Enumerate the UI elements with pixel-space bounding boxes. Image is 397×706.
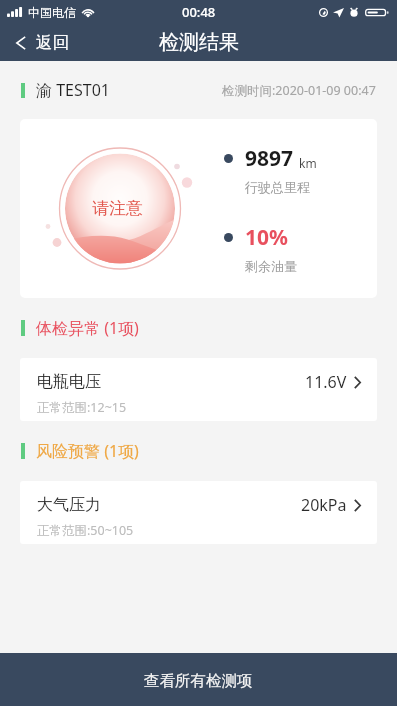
staticText: 中国电信: [28, 5, 76, 20]
staticText: 行驶总里程: [245, 179, 310, 195]
button[interactable]: 查看所有检测项: [0, 653, 397, 706]
button[interactable]: 大气压力: [20, 481, 377, 544]
staticText: 检测结果: [159, 30, 239, 55]
staticText: 00:48: [182, 3, 216, 21]
button[interactable]: 返回: [0, 24, 83, 61]
staticText: 检测时间:2020-01-09 00:47: [222, 82, 376, 99]
staticText: 9897: [245, 144, 294, 173]
staticText: 返回: [36, 32, 69, 53]
staticText: 风险预警 (1项): [36, 440, 139, 462]
staticText: 渝 TEST01: [36, 79, 110, 101]
staticText: 11.6V: [305, 371, 347, 393]
staticText: 请注意: [92, 198, 143, 219]
staticText: 20kPa: [301, 494, 347, 516]
staticText: 正常范围:12~15: [37, 399, 127, 416]
staticText: 剩余油量: [245, 258, 297, 274]
staticText: 查看所有检测项: [144, 671, 253, 691]
staticText: 电瓶电压: [37, 372, 101, 392]
staticText: km: [299, 155, 317, 171]
button[interactable]: 电瓶电压: [20, 358, 377, 421]
staticText: 体检异常 (1项): [36, 317, 139, 339]
staticText: 10%: [245, 223, 288, 252]
staticText: 正常范围:50~105: [37, 522, 134, 539]
staticText: 大气压力: [37, 495, 101, 515]
